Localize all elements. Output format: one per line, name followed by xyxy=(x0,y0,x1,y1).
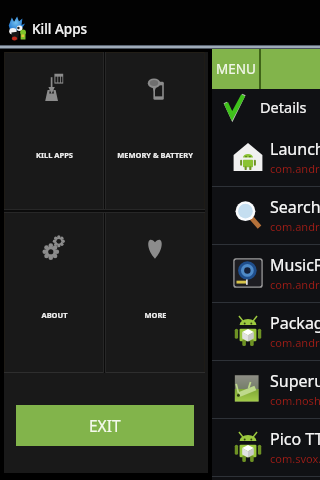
button[interactable]: Launcher xyxy=(212,128,320,186)
staticText: EXIT xyxy=(89,415,121,436)
staticText: MENU xyxy=(216,60,256,78)
staticText: Superuser xyxy=(270,370,320,392)
button[interactable]: ABOUT xyxy=(5,213,103,371)
button[interactable]: Superuser xyxy=(212,360,320,418)
staticText: Details xyxy=(260,97,307,117)
staticText: Search xyxy=(270,196,320,218)
button[interactable]: Details xyxy=(212,89,320,128)
staticText: com.svox.pico xyxy=(270,451,320,466)
staticText: ABOUT xyxy=(41,310,68,320)
button[interactable]: MEMORY & BATTERY xyxy=(106,53,204,211)
staticText: com.android.musicfx xyxy=(270,277,320,292)
button[interactable]: Package installer xyxy=(212,302,320,360)
staticText: com.noshufou.android.su xyxy=(270,393,320,408)
staticText: MORE xyxy=(144,310,167,320)
button[interactable]: Pico TTS xyxy=(212,418,320,476)
staticText: MusicFX xyxy=(270,254,320,276)
staticText: com.android.launcher xyxy=(270,161,320,176)
staticText: Pico TTS xyxy=(270,428,320,450)
button[interactable]: Search xyxy=(212,186,320,244)
button[interactable]: KILL APPS xyxy=(5,53,103,211)
staticText: Launcher xyxy=(270,138,320,160)
staticText: Package installer xyxy=(270,312,320,334)
staticText: com.android.quicksearchbox xyxy=(270,219,320,234)
staticText: com.android.packageinstaller xyxy=(270,335,320,350)
button[interactable]: MusicFX xyxy=(212,244,320,302)
button[interactable]: MENU xyxy=(212,49,259,89)
button[interactable]: EXIT xyxy=(16,405,194,446)
button[interactable]: MORE xyxy=(106,213,204,371)
staticText: MEMORY & BATTERY xyxy=(117,150,193,160)
staticText: Kill Apps xyxy=(32,20,88,38)
staticText: KILL APPS xyxy=(36,150,73,160)
